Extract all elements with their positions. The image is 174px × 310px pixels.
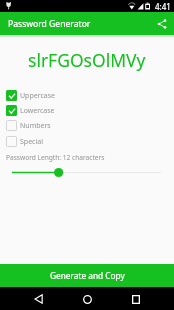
staticText: Special bbox=[20, 137, 43, 147]
button[interactable]: Recents bbox=[125, 288, 147, 310]
staticText: Password Generator bbox=[8, 18, 91, 30]
staticText: Numbers bbox=[20, 121, 51, 131]
button[interactable]: Lowercase bbox=[0, 103, 174, 118]
button[interactable]: Uppercase bbox=[0, 88, 174, 103]
button[interactable]: Special bbox=[0, 134, 174, 149]
staticText: Uppercase bbox=[20, 91, 56, 101]
button[interactable]: Share bbox=[153, 15, 171, 33]
staticText: Generate and Copy bbox=[50, 270, 125, 281]
staticText: Password Length: 12 characters bbox=[6, 153, 105, 162]
button[interactable]: Numbers bbox=[0, 118, 174, 133]
staticText: 4:41 bbox=[155, 1, 171, 12]
staticText: Lowercase bbox=[20, 106, 55, 116]
button[interactable]: Generate and Copy bbox=[0, 264, 174, 287]
staticText: slrFGOsOlMVy bbox=[28, 48, 146, 72]
button[interactable]: Home bbox=[76, 288, 98, 310]
button[interactable] bbox=[0, 165, 174, 180]
button[interactable]: Back bbox=[27, 288, 49, 310]
